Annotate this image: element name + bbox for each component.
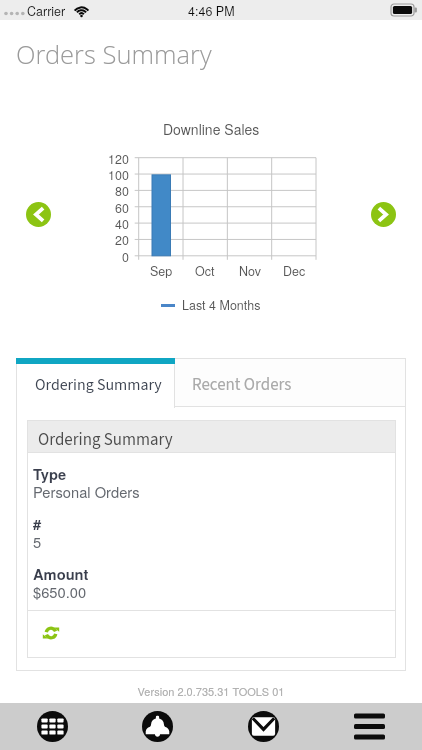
button[interactable]: Messages xyxy=(210,703,316,750)
button[interactable]: Apps xyxy=(0,703,105,750)
staticText: Amount xyxy=(33,563,89,584)
staticText: Ordering Summary xyxy=(35,374,162,397)
staticText: $650.00 xyxy=(33,581,87,602)
button[interactable]: Notifications xyxy=(105,703,210,750)
staticText: 0 xyxy=(122,248,129,264)
staticText: # xyxy=(33,513,42,534)
button[interactable]: Refresh xyxy=(43,625,59,641)
staticText: Version 2.0.735.31 TOOLS 01 xyxy=(0,683,422,699)
button[interactable]: Next period xyxy=(371,202,396,227)
staticText: Recent Orders xyxy=(192,373,292,397)
staticText: Sep xyxy=(150,262,173,278)
staticText: Type xyxy=(33,463,67,484)
staticText: Nov xyxy=(239,262,261,278)
staticText: 120 xyxy=(108,150,129,166)
staticText: Orders Summary xyxy=(16,37,212,72)
button[interactable]: Ordering Summary xyxy=(16,358,175,408)
staticText: Last 4 Months xyxy=(182,296,261,314)
staticText: 40 xyxy=(115,215,129,231)
staticText: Oct xyxy=(195,262,215,278)
staticText: Dec xyxy=(283,262,306,278)
staticText: Ordering Summary xyxy=(38,428,173,452)
staticText: Personal Orders xyxy=(33,481,140,502)
button[interactable]: Menu xyxy=(316,703,422,750)
staticText: 80 xyxy=(115,182,129,198)
staticText: 100 xyxy=(108,166,129,182)
staticText: Downline Sales xyxy=(163,119,260,139)
staticText: Carrier xyxy=(27,2,66,20)
staticText: 4:46 PM xyxy=(188,2,235,20)
button[interactable]: Previous period xyxy=(26,202,51,227)
staticText: 20 xyxy=(115,231,129,247)
staticText: 60 xyxy=(115,199,129,215)
staticText: 5 xyxy=(33,531,42,552)
button[interactable]: Recent Orders xyxy=(174,358,406,407)
